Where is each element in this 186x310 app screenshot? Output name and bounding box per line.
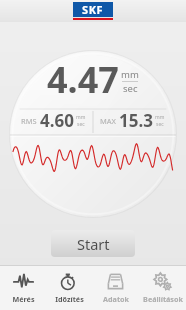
staticText: Start bbox=[77, 234, 110, 254]
staticText: 4.60 bbox=[40, 109, 74, 132]
staticText: 4.47 bbox=[47, 55, 119, 104]
staticText: SKF bbox=[82, 2, 104, 17]
button[interactable]: Beállítások bbox=[139, 266, 186, 310]
staticText: sec bbox=[156, 121, 164, 128]
staticText: mm bbox=[121, 68, 139, 81]
staticText: sec bbox=[77, 121, 85, 128]
staticText: Időzítés bbox=[55, 294, 84, 304]
staticText: sec bbox=[123, 82, 138, 95]
staticText: 15.3 bbox=[119, 109, 153, 132]
button[interactable]: Időzítés bbox=[46, 266, 92, 310]
staticText: Beállítások bbox=[143, 294, 183, 304]
staticText: mm bbox=[76, 114, 86, 121]
staticText: RMS bbox=[21, 116, 37, 126]
button[interactable]: Adatok bbox=[92, 266, 139, 310]
button[interactable]: Mérés bbox=[0, 266, 46, 310]
staticText: Mérés bbox=[12, 294, 35, 304]
staticText: mm bbox=[155, 114, 165, 121]
staticText: Adatok bbox=[103, 294, 129, 304]
staticText: MAX bbox=[100, 116, 116, 126]
button[interactable]: Start bbox=[51, 230, 135, 257]
